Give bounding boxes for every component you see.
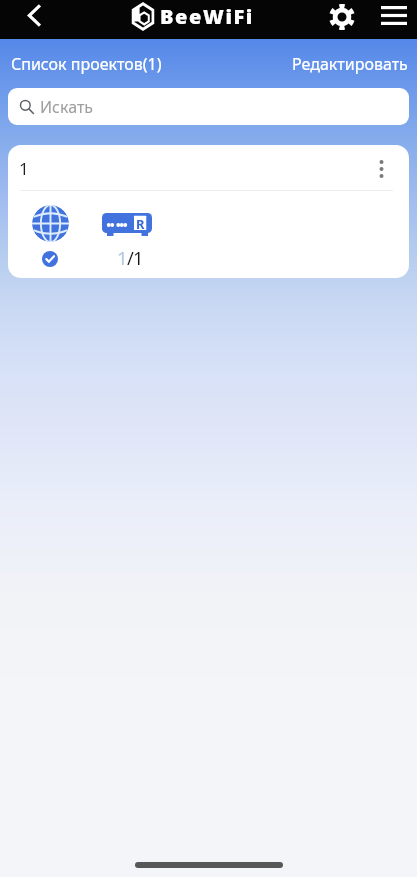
staticText: 1 xyxy=(19,157,29,180)
button[interactable]: Список проектов(1) xyxy=(0,49,166,79)
staticText: Искать xyxy=(40,96,94,118)
staticText: BeeWiFi xyxy=(160,3,254,30)
button[interactable]: Искать xyxy=(8,88,409,125)
button[interactable]: More options xyxy=(366,154,396,184)
staticText: Список проектов(1) xyxy=(11,53,162,75)
staticText: /1 xyxy=(127,245,143,270)
staticText: R xyxy=(136,215,145,233)
button[interactable]: 1 xyxy=(8,145,409,278)
button[interactable]: Menu xyxy=(378,0,410,31)
button[interactable]: Settings xyxy=(326,1,358,33)
button[interactable]: Редактировать xyxy=(288,49,417,79)
staticText: 1 xyxy=(117,245,127,270)
staticText: Редактировать xyxy=(292,53,408,75)
button[interactable]: Back xyxy=(21,2,47,28)
